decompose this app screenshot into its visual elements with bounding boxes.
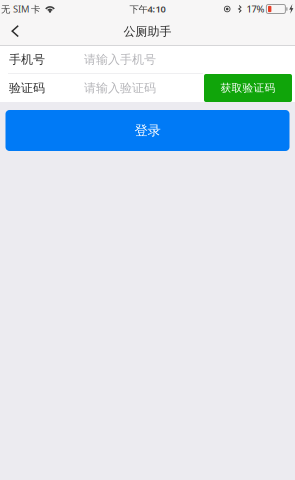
staticText: 手机号 <box>9 52 45 67</box>
staticText: 请输入手机号 <box>84 52 156 67</box>
staticText: 登录 <box>134 122 160 139</box>
staticText: 请输入验证码 <box>84 81 156 95</box>
staticText: 无 SIM 卡 <box>1 3 40 15</box>
button[interactable]: 登录 <box>5 110 289 151</box>
staticText: 公厕助手 <box>123 24 171 39</box>
button[interactable]: 返回 <box>0 18 31 44</box>
staticText: 获取验证码 <box>220 81 275 94</box>
staticText: 验证码 <box>9 81 45 95</box>
button[interactable]: 获取验证码 <box>204 74 292 102</box>
staticText: 17% <box>246 3 264 15</box>
staticText: 下午4:10 <box>129 3 165 15</box>
